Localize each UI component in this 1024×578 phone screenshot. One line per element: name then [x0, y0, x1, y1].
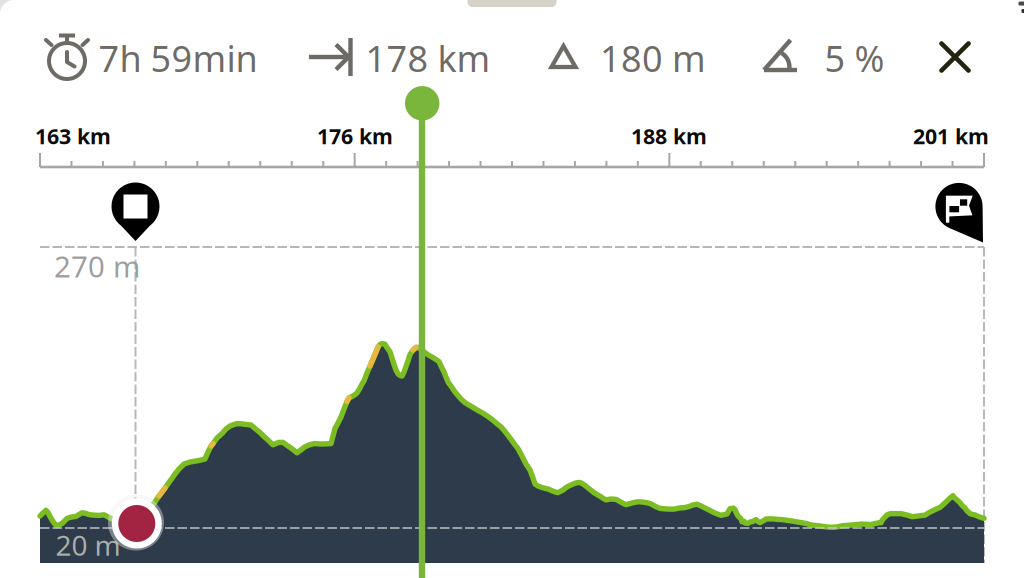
- staticText: 178 km: [365, 34, 490, 82]
- button[interactable]: Close: [922, 24, 988, 90]
- staticText: 270 m: [54, 246, 140, 285]
- staticText: 201 km: [913, 122, 989, 150]
- staticText: 188 km: [631, 122, 707, 150]
- button[interactable]: Scrub route position: [398, 79, 446, 127]
- staticText: 20 m: [55, 526, 120, 564]
- button[interactable]: Finish of route: [935, 182, 987, 246]
- button[interactable]: Start of route: [109, 179, 161, 243]
- staticText: 176 km: [317, 122, 393, 150]
- staticText: 163 km: [35, 122, 111, 150]
- staticText: 180 m: [600, 34, 706, 82]
- staticText: 7h 59min: [98, 34, 257, 82]
- staticText: 5 %: [824, 34, 884, 82]
- button[interactable]: Current position: [110, 496, 164, 550]
